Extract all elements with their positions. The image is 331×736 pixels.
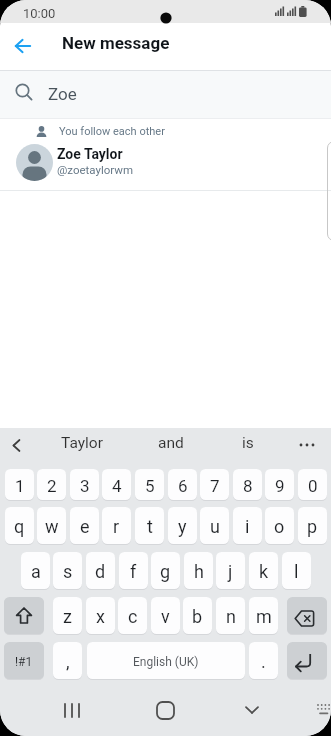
button[interactable]: !#1 xyxy=(4,642,44,679)
staticText: 10:00 xyxy=(23,6,56,21)
staticText: New message xyxy=(62,33,170,53)
button[interactable] xyxy=(293,431,321,459)
button[interactable]: j xyxy=(216,552,245,589)
button[interactable]: t xyxy=(135,507,164,544)
button[interactable]: English (UK) xyxy=(87,642,245,679)
button[interactable]: w xyxy=(37,507,66,544)
button[interactable]: . xyxy=(249,642,278,679)
button[interactable]: 8 xyxy=(233,469,262,500)
staticText: is xyxy=(242,434,254,452)
staticText: 7 xyxy=(210,476,220,496)
staticText: 6 xyxy=(178,476,188,496)
button[interactable]: b xyxy=(183,597,212,634)
staticText: t xyxy=(147,516,153,537)
button[interactable]: You follow each other xyxy=(0,119,331,190)
button[interactable] xyxy=(2,431,30,459)
staticText: Taylor xyxy=(61,434,103,452)
staticText: 9 xyxy=(275,476,285,496)
button[interactable]: h xyxy=(184,552,213,589)
staticText: 1 xyxy=(15,476,25,496)
button[interactable] xyxy=(234,692,270,728)
staticText: x xyxy=(96,606,105,627)
button[interactable]: and xyxy=(141,428,201,458)
staticText: e xyxy=(80,516,90,537)
staticText: 8 xyxy=(243,476,253,496)
button[interactable]: 1 xyxy=(5,469,34,500)
staticText: n xyxy=(226,606,236,627)
staticText: j xyxy=(228,561,233,582)
staticText: 4 xyxy=(112,476,122,496)
button[interactable] xyxy=(287,597,327,634)
button[interactable]: , xyxy=(53,642,82,679)
button[interactable]: m xyxy=(249,597,278,634)
staticText: z xyxy=(63,606,72,627)
button[interactable]: d xyxy=(86,552,115,589)
staticText: You follow each other xyxy=(59,125,165,138)
staticText: p xyxy=(307,516,318,537)
button[interactable]: l xyxy=(282,552,311,589)
staticText: !#1 xyxy=(15,655,33,669)
staticText: m xyxy=(256,606,272,627)
button[interactable]: Taylor xyxy=(47,428,117,458)
staticText: f xyxy=(130,561,137,582)
staticText: , xyxy=(66,651,70,672)
staticText: h xyxy=(194,561,204,582)
staticText: and xyxy=(158,434,184,452)
button[interactable]: i xyxy=(233,507,262,544)
button[interactable] xyxy=(4,597,44,634)
button[interactable]: c xyxy=(118,597,147,634)
button[interactable] xyxy=(312,694,331,724)
staticText: w xyxy=(45,516,59,537)
button[interactable]: 3 xyxy=(70,469,99,500)
button[interactable]: o xyxy=(265,507,294,544)
staticText: 5 xyxy=(145,476,155,496)
button[interactable]: 2 xyxy=(37,469,66,500)
staticText: s xyxy=(63,561,73,582)
button[interactable]: e xyxy=(70,507,99,544)
staticText: k xyxy=(259,561,269,582)
staticText: a xyxy=(31,561,41,582)
staticText: 2 xyxy=(47,476,57,496)
button[interactable]: x xyxy=(86,597,115,634)
button[interactable]: v xyxy=(151,597,180,634)
button[interactable]: z xyxy=(53,597,82,634)
staticText: u xyxy=(210,516,220,537)
staticText: 3 xyxy=(80,476,90,496)
button[interactable]: k xyxy=(249,552,278,589)
button[interactable]: y xyxy=(168,507,197,544)
button[interactable]: 0 xyxy=(298,469,327,500)
staticText: . xyxy=(261,651,266,672)
button[interactable]: s xyxy=(53,552,82,589)
button[interactable]: u xyxy=(200,507,229,544)
staticText: y xyxy=(178,516,187,537)
staticText: r xyxy=(113,516,120,537)
button[interactable]: 4 xyxy=(102,469,131,500)
button[interactable]: r xyxy=(102,507,131,544)
button[interactable]: 5 xyxy=(135,469,164,500)
button[interactable]: Zoe xyxy=(0,71,331,118)
staticText: Zoe xyxy=(48,84,77,104)
button[interactable]: a xyxy=(21,552,50,589)
button[interactable]: 6 xyxy=(168,469,197,500)
button[interactable]: 9 xyxy=(265,469,294,500)
button[interactable]: g xyxy=(151,552,180,589)
staticText: i xyxy=(245,516,250,537)
button[interactable]: q xyxy=(5,507,34,544)
button[interactable]: n xyxy=(216,597,245,634)
staticText: g xyxy=(160,561,171,582)
button[interactable]: f xyxy=(119,552,148,589)
staticText: l xyxy=(294,561,299,582)
button[interactable] xyxy=(287,642,327,679)
staticText: b xyxy=(192,606,203,627)
button[interactable]: 7 xyxy=(200,469,229,500)
button[interactable] xyxy=(147,692,183,728)
staticText: q xyxy=(14,516,25,537)
staticText: o xyxy=(274,516,285,537)
staticText: 0 xyxy=(308,476,318,496)
button[interactable]: is xyxy=(218,428,278,458)
button[interactable] xyxy=(9,33,37,59)
staticText: @zoetaylorwm xyxy=(57,163,134,176)
button[interactable] xyxy=(54,692,90,728)
staticText: d xyxy=(95,561,106,582)
button[interactable]: p xyxy=(298,507,327,544)
